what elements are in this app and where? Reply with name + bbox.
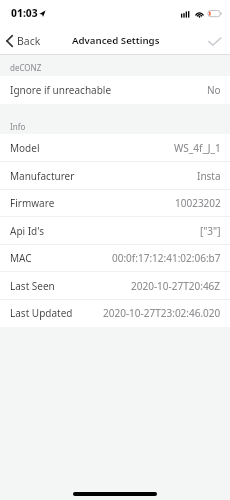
button[interactable]: Manufacturer — [0, 162, 230, 190]
button[interactable]: Firmware — [0, 189, 230, 217]
staticText: ["3"] — [200, 224, 221, 238]
staticText: Manufacturer — [10, 169, 75, 183]
button[interactable]: Model — [0, 134, 230, 162]
staticText: Ignore if unreachable — [10, 83, 112, 97]
staticText: 2020-10-27T20:46Z — [131, 279, 221, 293]
button[interactable]: Save — [204, 30, 226, 52]
staticText: Info — [10, 121, 26, 132]
staticText: WS_4f_J_1 — [174, 141, 221, 155]
staticText: Insta — [197, 169, 221, 183]
staticText: deCONZ — [10, 62, 42, 73]
staticText: Firmware — [10, 196, 55, 210]
staticText: 2020-10-27T23:02:46.020 — [103, 306, 221, 320]
button[interactable]: Ignore if unreachable — [0, 76, 230, 104]
button[interactable]: Api Id's — [0, 217, 230, 245]
staticText: Api Id's — [10, 224, 44, 238]
staticText: Back — [17, 34, 41, 48]
staticText: Last Updated — [10, 306, 73, 320]
staticText: Model — [10, 141, 40, 155]
button[interactable]: Last Seen — [0, 272, 230, 300]
staticText: No — [207, 83, 221, 97]
staticText: 00:0f:17:12:41:02:06:b7 — [112, 251, 221, 265]
button[interactable]: Last Updated — [0, 299, 230, 327]
staticText: Advanced Settings — [72, 34, 160, 47]
button[interactable]: Back — [6, 34, 41, 48]
staticText: Last Seen — [10, 279, 55, 293]
button[interactable]: MAC — [0, 244, 230, 272]
staticText: MAC — [10, 251, 32, 265]
staticText: 10023202 — [175, 196, 221, 210]
staticText: 01:03 — [11, 6, 38, 20]
